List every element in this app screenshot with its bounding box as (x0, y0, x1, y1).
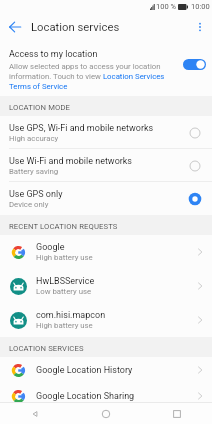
staticText: Access to my location (9, 49, 98, 60)
button[interactable]: Home (70, 403, 141, 424)
button[interactable]: Use GPS, Wi-Fi and mobile networks (0, 116, 212, 149)
staticText: Device only (9, 200, 49, 209)
staticText: High battery use (36, 321, 93, 330)
staticText: Use GPS only (9, 189, 63, 200)
staticText: 10:00 (191, 2, 210, 11)
staticText: Allow selected apps to access your locat… (9, 62, 165, 91)
button[interactable]: Google (0, 235, 212, 269)
staticText: RECENT LOCATION REQUESTS (9, 222, 118, 231)
staticText: Google (36, 242, 65, 253)
staticText: Location services (31, 21, 120, 34)
staticText: High accuracy (9, 134, 59, 143)
staticText: Use Wi-Fi and mobile networks (9, 156, 133, 167)
staticText: com.hisi.mapcon (36, 310, 106, 321)
button[interactable]: HwLBSService (0, 269, 212, 303)
staticText: Battery saving (9, 167, 59, 176)
button[interactable]: com.hisi.mapcon (0, 303, 212, 337)
button[interactable]: Back (5, 17, 25, 37)
button[interactable]: Access to my location (0, 41, 212, 96)
button[interactable]: Back (0, 403, 70, 424)
staticText: 100 % (156, 2, 176, 11)
staticText: HwLBSService (36, 276, 95, 287)
button[interactable]: Google Location History (0, 357, 212, 383)
staticText: Low battery use (36, 287, 92, 296)
button[interactable]: Google Location Sharing (0, 383, 212, 409)
staticText: LOCATION SERVICES (9, 344, 84, 353)
button[interactable]: Recent apps (141, 403, 212, 424)
staticText: Google Location Sharing (36, 391, 135, 402)
button[interactable]: More options (190, 17, 210, 37)
button[interactable]: Use GPS only (0, 182, 212, 215)
button[interactable]: Use Wi-Fi and mobile networks (0, 149, 212, 182)
staticText: High battery use (36, 253, 93, 262)
staticText: Google Location History (36, 365, 133, 376)
staticText: LOCATION MODE (9, 103, 71, 112)
staticText: Use GPS, Wi-Fi and mobile networks (9, 123, 154, 134)
